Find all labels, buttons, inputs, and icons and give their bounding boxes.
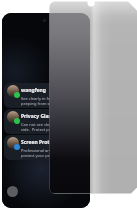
button[interactable]: wangfeng [4,83,86,108]
staticText: Privacy Glass Film [21,113,66,120]
button[interactable]: Screen Protector [4,135,86,160]
staticText: See clearly in front side - Prevent peep… [21,96,83,106]
staticText: Screen Protector [21,139,63,146]
staticText: Professional and Safe, protect your priv… [21,148,63,158]
staticText: wangfeng [21,87,47,94]
button[interactable]: App shortcut [7,186,18,197]
button[interactable]: Privacy Glass Film [4,109,86,134]
staticText: Can not see clearly from side. Protect p… [21,122,67,132]
